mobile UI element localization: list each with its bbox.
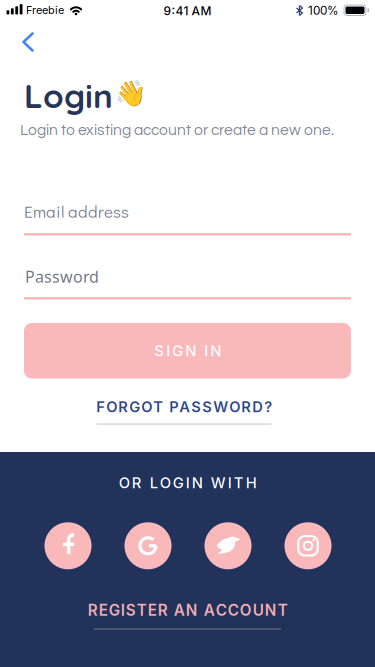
button[interactable]: R E G I S T E R A N A C C O U N T: [47, 601, 327, 630]
staticText: Email address: [24, 200, 129, 222]
button[interactable]: F O R G O T P A S S W O R D ?: [44, 398, 324, 425]
staticText: Login to existing account or create a ne…: [20, 122, 334, 138]
staticText: Login: [24, 75, 113, 116]
button[interactable]: Login with Facebook: [44, 522, 91, 569]
staticText: F O R G O T P A S S W O R D ?: [96, 398, 272, 416]
button[interactable]: Login with Instagram: [284, 522, 331, 569]
button[interactable]: S I G N I N: [24, 323, 351, 378]
staticText: S I G N I N: [154, 342, 221, 360]
staticText: Freebie: [26, 3, 64, 17]
staticText: O R L O G I N W I T H: [118, 474, 256, 492]
button[interactable]: Login with Google: [124, 522, 171, 569]
staticText: R E G I S T E R A N A C C O U N T: [87, 601, 287, 619]
staticText: Password: [25, 266, 99, 287]
button[interactable]: Login with Twitter: [204, 522, 251, 569]
staticText: 👋: [114, 79, 146, 108]
button[interactable]: Back: [18, 31, 48, 61]
staticText: 9:41 AM: [163, 3, 211, 18]
staticText: 100%: [308, 3, 339, 18]
